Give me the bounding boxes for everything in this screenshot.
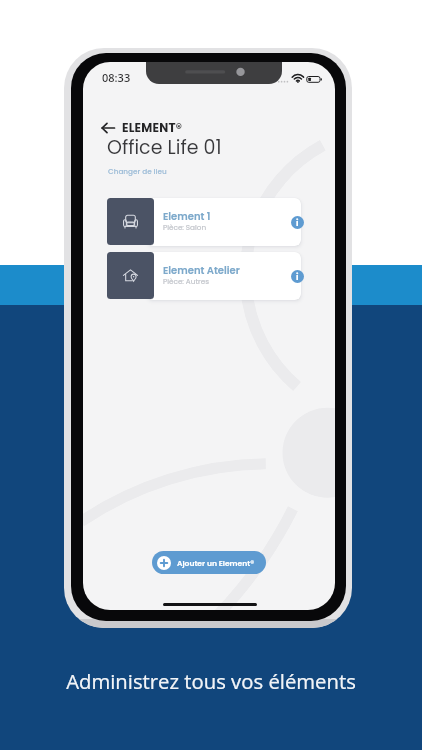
button[interactable]: Back [101, 119, 183, 136]
staticText: i [296, 271, 299, 283]
button[interactable]: Info [291, 270, 304, 283]
button[interactable]: Changer de lieu [108, 166, 167, 176]
button[interactable]: Ajouter un Element® [152, 551, 266, 574]
button[interactable]: Element 1 [107, 198, 301, 246]
staticText: Administrez tous vos éléments [66, 667, 356, 695]
staticText: Pièce: Salon [163, 222, 207, 232]
staticText: Pièce: Autres [163, 276, 210, 286]
staticText: Element Atelier [163, 263, 240, 277]
staticText: i [296, 217, 299, 229]
button[interactable]: Info [291, 216, 304, 229]
staticText: 08:33 [102, 70, 131, 85]
staticText: Element 1 [163, 209, 211, 223]
staticText: Office Life 01 [107, 134, 222, 161]
staticText: ELEMENT® [122, 119, 183, 136]
button[interactable]: Element Atelier [107, 252, 301, 300]
staticText: Ajouter un Element® [177, 558, 255, 569]
other: Back [101, 120, 115, 136]
